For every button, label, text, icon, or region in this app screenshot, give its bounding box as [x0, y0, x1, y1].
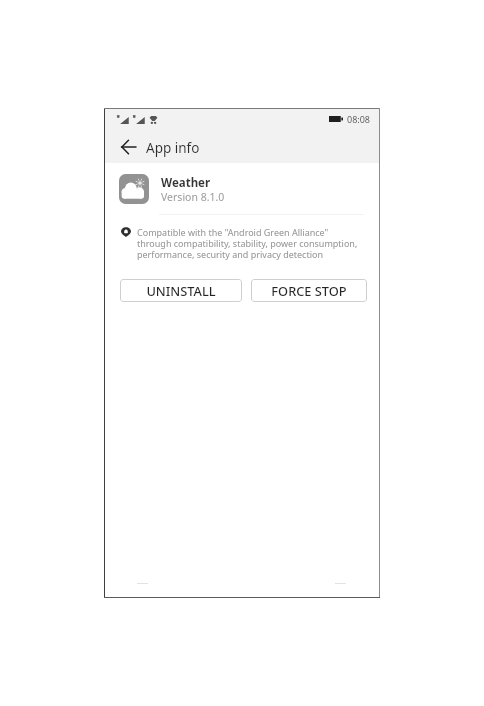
staticText: App info [146, 139, 200, 157]
button[interactable]: UNINSTALL [120, 279, 242, 302]
staticText: Compatible with the "Android Green Allia… [137, 226, 358, 260]
staticText: UNINSTALL [146, 282, 216, 299]
staticText: Weather [161, 175, 211, 191]
button[interactable]: FORCE STOP [251, 279, 367, 302]
staticText: 08:08 [347, 113, 371, 125]
staticText: Version 8.1.0 [161, 190, 225, 204]
staticText: FORCE STOP [271, 282, 347, 299]
button[interactable]: Back [113, 132, 143, 162]
